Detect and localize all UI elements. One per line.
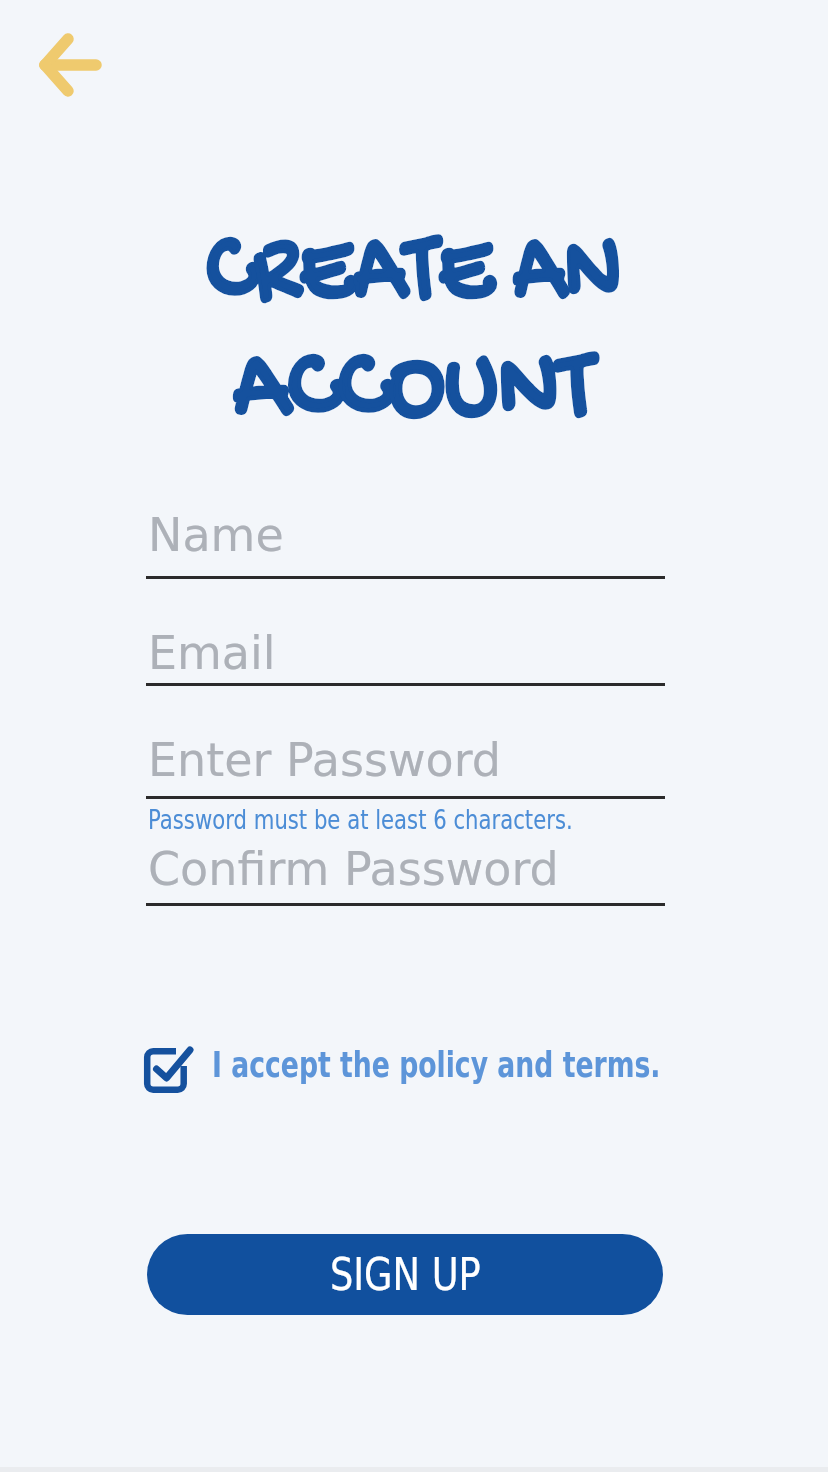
staticText: Email <box>148 626 276 680</box>
staticText: Enter Password <box>148 733 501 787</box>
staticText: ACCOUNT <box>48 330 780 454</box>
staticText: CREATE AN <box>71 213 757 337</box>
staticText: Confirm Password <box>148 842 559 896</box>
staticText: ACCOUNT <box>48 330 780 454</box>
staticText: CREATE AN <box>71 213 757 337</box>
staticText: SIGN UP <box>330 1249 481 1300</box>
staticText: I accept the policy and terms. <box>212 1045 661 1086</box>
staticText: Name <box>148 508 284 562</box>
button[interactable]: I accept the policy and terms. <box>138 1034 828 1104</box>
button[interactable] <box>30 22 114 106</box>
staticText: Password must be at least 6 characters. <box>148 804 573 835</box>
button[interactable]: SIGN UP <box>147 1234 663 1315</box>
